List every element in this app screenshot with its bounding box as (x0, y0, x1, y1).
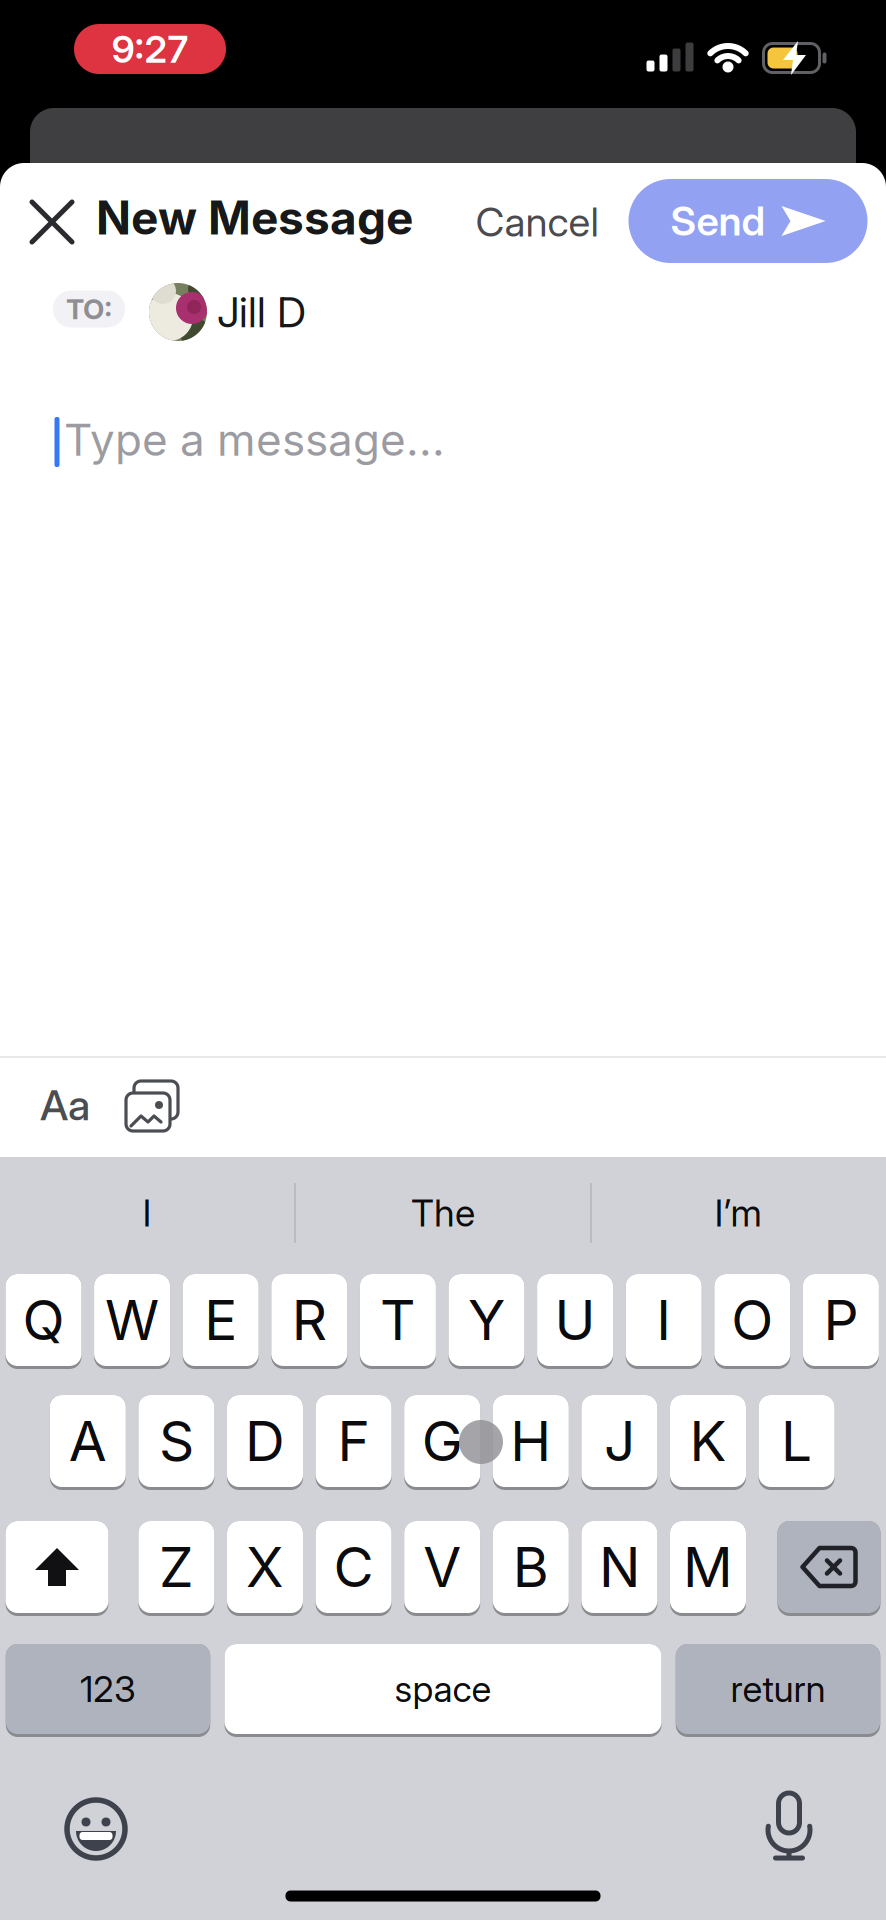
button[interactable]: Z (138, 1521, 214, 1616)
button[interactable]: Y (448, 1274, 524, 1369)
button[interactable] (777, 1521, 880, 1616)
button[interactable]: C (316, 1521, 392, 1616)
button[interactable]: D (227, 1395, 303, 1490)
button[interactable]: T (360, 1274, 436, 1369)
button[interactable]: L (759, 1395, 835, 1490)
button[interactable]: Send (628, 179, 867, 263)
button[interactable]: K (670, 1395, 746, 1490)
button[interactable]: A (50, 1395, 126, 1490)
button[interactable]: Cancel (475, 198, 598, 246)
button[interactable]: The (303, 1173, 583, 1253)
button[interactable]: R (271, 1274, 347, 1369)
button[interactable]: O (714, 1274, 790, 1369)
staticText: P (823, 1287, 858, 1353)
staticText: U (555, 1287, 596, 1353)
button[interactable] (125, 1080, 179, 1132)
staticText: New Message (96, 190, 413, 246)
button[interactable]: I’m (598, 1173, 878, 1253)
button[interactable] (65, 1798, 127, 1860)
staticText: F (338, 1408, 370, 1474)
staticText: E (204, 1287, 237, 1353)
button[interactable]: Q (5, 1274, 81, 1369)
staticText: O (731, 1287, 773, 1353)
button[interactable]: I (7, 1173, 287, 1253)
staticText: I’m (714, 1191, 761, 1235)
staticText: H (510, 1408, 551, 1474)
staticText: D (245, 1408, 285, 1474)
button[interactable]: 9:27 (74, 24, 226, 74)
staticText: V (423, 1534, 461, 1600)
staticText: L (781, 1408, 812, 1474)
staticText: I (142, 1191, 151, 1235)
staticText: X (246, 1534, 284, 1600)
staticText: Type a message... (64, 413, 445, 466)
button[interactable]: M (670, 1521, 746, 1616)
staticText: J (604, 1408, 635, 1474)
button[interactable]: U (537, 1274, 613, 1369)
staticText: N (599, 1534, 640, 1600)
button[interactable]: J (581, 1395, 657, 1490)
staticText: Jill D (217, 287, 306, 337)
staticText: 123 (80, 1667, 136, 1711)
button[interactable]: F (316, 1395, 392, 1490)
staticText: Cancel (475, 198, 598, 246)
button[interactable]: N (581, 1521, 657, 1616)
button[interactable]: return (676, 1644, 880, 1737)
button[interactable]: S (138, 1395, 214, 1490)
button[interactable]: W (94, 1274, 170, 1369)
button[interactable]: X (227, 1521, 303, 1616)
staticText: I (656, 1287, 671, 1353)
staticText: R (292, 1287, 327, 1353)
staticText: return (730, 1667, 825, 1711)
button[interactable]: P (803, 1274, 879, 1369)
button[interactable]: E (183, 1274, 259, 1369)
staticText: 9:27 (111, 26, 188, 72)
button[interactable] (32, 202, 72, 242)
staticText: Y (468, 1287, 505, 1353)
staticText: TO: (66, 292, 112, 326)
button[interactable]: Jill D (149, 283, 306, 341)
button[interactable]: H (493, 1395, 569, 1490)
staticText: B (513, 1534, 549, 1600)
button[interactable]: Type a message... (0, 0, 886, 500)
staticText: G (422, 1408, 463, 1474)
button[interactable]: space (224, 1644, 661, 1737)
button[interactable]: 123 (6, 1644, 210, 1737)
staticText: C (334, 1534, 374, 1600)
staticText: A (69, 1408, 107, 1474)
button[interactable]: V (404, 1521, 480, 1616)
staticText: The (411, 1191, 475, 1235)
staticText: Send (670, 197, 765, 245)
button[interactable]: I (626, 1274, 702, 1369)
button[interactable]: Aa (40, 1080, 90, 1130)
staticText: S (159, 1408, 194, 1474)
staticText: Z (159, 1534, 194, 1600)
staticText: K (689, 1408, 726, 1474)
staticText: T (380, 1287, 416, 1353)
staticText: Q (22, 1287, 64, 1353)
staticText: space (394, 1667, 491, 1711)
staticText: Aa (40, 1080, 90, 1130)
button[interactable] (5, 1521, 108, 1616)
button[interactable] (757, 1793, 821, 1861)
button[interactable]: G (404, 1395, 480, 1490)
staticText: M (683, 1534, 733, 1600)
button[interactable]: B (493, 1521, 569, 1616)
staticText: W (105, 1287, 159, 1353)
